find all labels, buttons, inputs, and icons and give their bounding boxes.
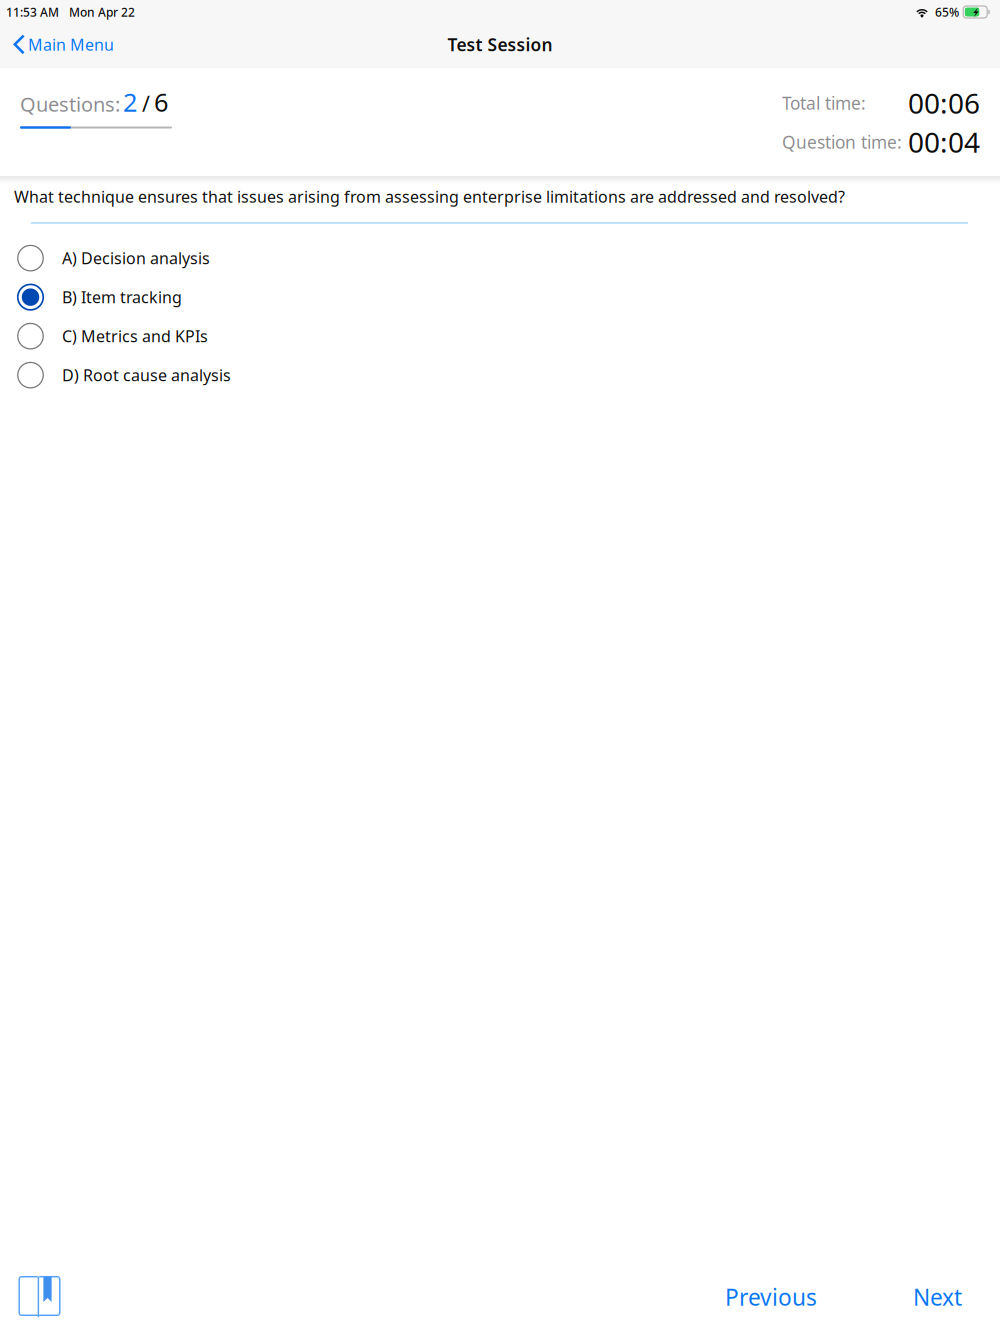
button[interactable]: Bookmark question [12, 1269, 67, 1324]
staticText: 11:53 AM [6, 4, 59, 20]
staticText: / [142, 89, 150, 118]
staticText: 2 [123, 85, 137, 119]
staticText: Questions: [20, 91, 120, 117]
staticText: Main Menu [28, 34, 114, 55]
button[interactable]: Main Menu [5, 26, 122, 63]
staticText: Mon Apr 22 [69, 4, 135, 20]
staticText: 00:04 [908, 123, 980, 161]
button[interactable]: C) Metrics and KPIs [0, 317, 1000, 356]
button[interactable]: Next [903, 1272, 972, 1322]
staticText: Next [913, 1282, 962, 1312]
staticText: Question time: [782, 130, 902, 153]
staticText: 6 [154, 85, 168, 119]
staticText: D) Root cause analysis [62, 364, 231, 386]
button[interactable]: B) Item tracking [0, 278, 1000, 317]
staticText: 00:06 [908, 84, 980, 122]
staticText: What technique ensures that issues arisi… [14, 186, 845, 207]
button[interactable]: A) Decision analysis [0, 239, 1000, 278]
staticText: C) Metrics and KPIs [62, 325, 208, 347]
staticText: B) Item tracking [62, 286, 182, 308]
staticText: Test Session [447, 33, 552, 56]
staticText: 65% [935, 4, 959, 20]
button[interactable]: D) Root cause analysis [0, 356, 1000, 395]
button[interactable]: Previous [715, 1272, 827, 1322]
staticText: Total time: [782, 91, 866, 114]
staticText: Previous [725, 1282, 817, 1312]
staticText: A) Decision analysis [62, 247, 210, 269]
